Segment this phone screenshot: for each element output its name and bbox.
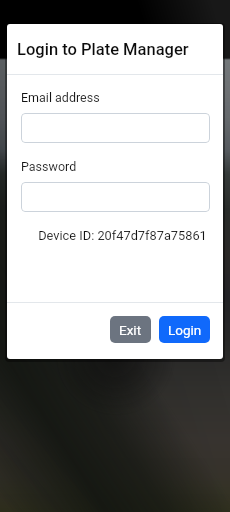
button[interactable]: Login: [159, 316, 210, 343]
staticText: Email address: [21, 90, 100, 105]
button[interactable]: [21, 182, 210, 212]
staticText: Login: [168, 322, 202, 338]
staticText: Login to Plate Manager: [17, 40, 189, 59]
button[interactable]: [21, 113, 210, 143]
staticText: Password: [21, 159, 77, 174]
button[interactable]: Exit: [110, 316, 151, 343]
staticText: Device ID: 20f47d7f87a75861: [28, 228, 217, 243]
staticText: Exit: [119, 322, 142, 338]
